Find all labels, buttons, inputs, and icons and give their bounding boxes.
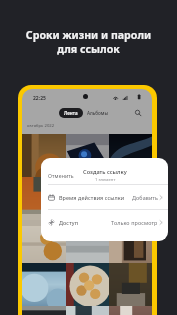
staticText: Создать ссылку — [83, 168, 127, 176]
staticText: Доступ — [59, 219, 79, 226]
button[interactable] — [22, 177, 66, 220]
button[interactable] — [109, 177, 152, 220]
staticText: Альбомы — [87, 110, 109, 116]
button[interactable]: Лента — [59, 108, 83, 118]
staticText: Время действия ссылки — [59, 194, 125, 201]
button[interactable] — [66, 263, 109, 306]
staticText: Только просмотр — [111, 219, 158, 226]
staticText: октябрь 2022 — [27, 123, 55, 129]
button[interactable] — [22, 306, 66, 315]
button[interactable] — [22, 263, 66, 306]
staticText: Добавить — [132, 194, 158, 201]
button[interactable]: Альбомы — [83, 108, 113, 118]
button[interactable]: Время действия ссылки — [41, 185, 168, 209]
button[interactable] — [109, 220, 152, 263]
button[interactable] — [66, 220, 109, 263]
button[interactable] — [22, 134, 66, 177]
staticText: 22:25 — [33, 95, 46, 102]
button[interactable] — [66, 177, 109, 220]
staticText: Сроки жизни и пароли для ссылок — [0, 28, 177, 56]
button[interactable] — [109, 306, 152, 315]
button[interactable] — [66, 306, 109, 315]
button[interactable] — [22, 220, 66, 263]
button[interactable] — [66, 134, 109, 177]
staticText: Лента — [64, 110, 78, 116]
button[interactable]: Поиск — [134, 109, 142, 117]
button[interactable] — [109, 134, 152, 177]
button[interactable] — [109, 263, 152, 306]
staticText: 1 элемент — [95, 177, 116, 183]
button[interactable]: Доступ — [41, 210, 168, 234]
button[interactable]: Отменить — [41, 170, 78, 181]
